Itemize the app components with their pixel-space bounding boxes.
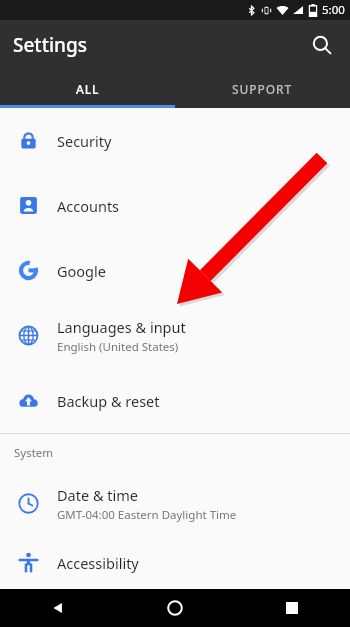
button[interactable]: Back: [0, 589, 116, 627]
staticText: Google: [57, 261, 106, 281]
staticText: System: [14, 445, 54, 461]
staticText: Backup & reset: [57, 391, 160, 411]
staticText: English (United States): [57, 339, 179, 355]
button[interactable]: Search: [302, 25, 342, 65]
staticText: Languages & input: [57, 317, 186, 337]
button[interactable]: Backup & reset: [0, 368, 350, 433]
button[interactable]: SUPPORT: [175, 70, 350, 108]
button[interactable]: Accounts: [0, 173, 350, 238]
staticText: 5:00: [322, 2, 345, 18]
staticText: SUPPORT: [232, 81, 293, 97]
staticText: Accounts: [57, 196, 120, 216]
button[interactable]: Accessibility: [0, 536, 350, 589]
staticText: Date & time: [57, 485, 138, 505]
staticText: Settings: [13, 32, 87, 58]
button[interactable]: Home: [116, 589, 233, 627]
button[interactable]: Google: [0, 238, 350, 303]
button[interactable]: Languages & input: [0, 303, 350, 368]
staticText: Accessibility: [57, 553, 139, 573]
staticText: ALL: [76, 81, 100, 97]
button[interactable]: Security: [0, 108, 350, 173]
button[interactable]: Date & time: [0, 471, 350, 536]
staticText: GMT-04:00 Eastern Daylight Time: [57, 507, 237, 523]
staticText: Security: [57, 131, 112, 151]
button[interactable]: ALL: [0, 70, 175, 108]
button[interactable]: Recent apps: [233, 589, 350, 627]
